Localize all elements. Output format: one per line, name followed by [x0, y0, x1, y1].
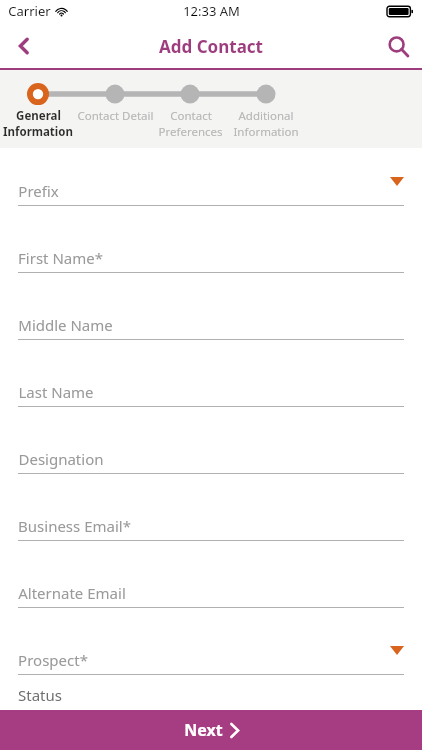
button[interactable]: Contact Detail [55, 108, 175, 124]
button[interactable]: Back [0, 22, 48, 70]
staticText: General [16, 108, 61, 124]
button[interactable]: Alternate Email [0, 567, 422, 619]
staticText: Add Contact [159, 35, 263, 58]
staticText: First Name* [18, 248, 103, 268]
button[interactable]: Additional [206, 108, 326, 140]
staticText: Prefix [18, 181, 59, 201]
staticText: Designation [18, 449, 104, 469]
button[interactable]: First Name* [0, 232, 422, 284]
button[interactable]: Search [374, 22, 422, 70]
staticText: Carrier [8, 2, 51, 20]
button[interactable]: Business Email* [0, 500, 422, 552]
staticText: Additional [238, 108, 294, 124]
staticText: Next [184, 719, 223, 741]
button[interactable]: Prefix [0, 165, 422, 217]
button[interactable]: Middle Name [0, 299, 422, 351]
button[interactable]: Next [0, 710, 422, 750]
button[interactable]: Contact [130, 108, 250, 140]
staticText: Information [3, 124, 73, 140]
button[interactable]: General [0, 108, 98, 140]
staticText: Last Name [18, 382, 94, 402]
staticText: Middle Name [18, 315, 113, 335]
staticText: Information [233, 124, 299, 140]
button[interactable]: Prospect* [0, 634, 422, 686]
staticText: 12:33 AM [183, 2, 240, 20]
button[interactable]: Designation [0, 433, 422, 485]
button[interactable]: Last Name [0, 366, 422, 418]
staticText: Business Email* [18, 516, 131, 536]
staticText: Prospect* [18, 650, 88, 670]
staticText: Contact Detail [77, 108, 154, 124]
staticText: Alternate Email [18, 583, 126, 603]
staticText: Contact [170, 108, 212, 124]
staticText: Preferences [158, 124, 223, 140]
staticText: Status [18, 685, 62, 705]
